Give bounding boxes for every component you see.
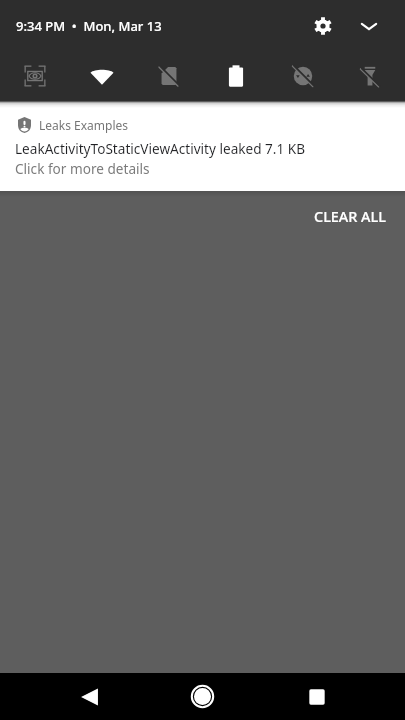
staticText: LeakActivityToStaticViewActivity leaked … bbox=[15, 139, 306, 158]
button[interactable]: CLEAR ALL bbox=[298, 191, 405, 239]
staticText: Leaks Examples bbox=[39, 117, 129, 133]
button[interactable]: Settings bbox=[301, 4, 345, 48]
button[interactable]: Battery bbox=[202, 51, 269, 100]
button[interactable]: Auto rotate off bbox=[269, 51, 336, 100]
button[interactable]: Wi-Fi bbox=[68, 51, 135, 100]
button[interactable]: Home bbox=[180, 673, 225, 720]
button[interactable]: Expand bbox=[347, 4, 391, 48]
button[interactable]: Leaks Examples bbox=[0, 101, 405, 191]
staticText: CLEAR ALL bbox=[314, 207, 386, 227]
button[interactable]: Recents bbox=[294, 673, 339, 720]
staticText: 9:34 PM • Mon, Mar 13 bbox=[16, 17, 162, 35]
button[interactable]: Screen record bbox=[2, 51, 68, 100]
button[interactable]: Mobile data off bbox=[135, 51, 202, 100]
staticText: Click for more details bbox=[15, 159, 150, 178]
button[interactable]: Flashlight off bbox=[336, 51, 403, 100]
button[interactable]: Back bbox=[67, 673, 112, 720]
